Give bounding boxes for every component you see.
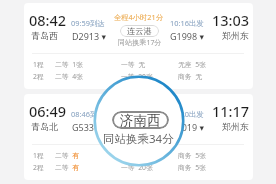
staticText: 1程 [33,60,44,69]
staticText: 同站换乘34分 [118,128,162,138]
staticText: G533 ▾ [72,121,101,133]
staticText: 11:17 [212,101,250,121]
staticText: 无座 5张 [178,60,206,69]
staticText: 二等 有 [55,163,79,172]
staticText: 08:46到达 [71,109,105,119]
staticText: 全程4小时28分 [114,103,164,113]
staticText: 济南西 [127,117,152,127]
staticText: 06:49 [29,101,67,121]
button[interactable]: Magnified transfer detail [95,77,184,166]
staticText: 同站换乘17分 [118,37,162,47]
staticText: 10:16出发 [170,18,204,28]
button[interactable]: 08:42 [24,3,253,89]
staticText: 商务 5张 [178,163,206,172]
staticText: 一等 无 [121,60,145,69]
staticText: 郑州东 [222,30,249,41]
staticText: G2019 ▾ [170,121,205,133]
staticText: 商务 无 [178,72,202,81]
staticText: 全程4小时21分 [114,12,164,22]
staticText: 2程 [33,163,44,172]
staticText: 二等 有 [55,151,79,160]
staticText: 济南西 [120,112,161,129]
staticText: 1程 [33,151,44,160]
staticText: 郑州东 [222,121,249,132]
staticText: 08:42 [29,10,67,30]
staticText: 13:03 [212,10,250,30]
staticText: 二等 4张 [55,72,83,81]
staticText: 二等 1张 [55,60,83,69]
staticText: G1998 ▾ [170,30,205,42]
staticText: 一等 20张 [121,163,153,172]
button[interactable]: 06:49 [24,94,253,180]
staticText: 一等 20张 [121,72,153,81]
staticText: 青岛北 [31,121,58,132]
staticText: 青岛西 [31,30,58,41]
staticText: 同站换乘34分 [103,131,174,147]
staticText: 商务 5张 [178,151,206,160]
staticText: 连云港 [127,26,152,36]
staticText: D2913 ▾ [72,30,107,42]
staticText: 09:59到达 [71,18,105,28]
staticText: 09:20出发 [170,109,204,119]
staticText: 2程 [33,72,44,81]
